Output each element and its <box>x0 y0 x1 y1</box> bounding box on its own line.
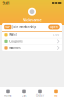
staticText: Order <box>36 94 44 97</box>
staticText: Favorites <box>9 46 20 50</box>
button[interactable]: Cart <box>16 87 32 100</box>
button[interactable]: Me <box>48 87 64 100</box>
button[interactable]: Favorites <box>2 45 62 51</box>
staticText: Coupons <box>9 40 22 43</box>
staticText: Open <box>50 25 58 29</box>
button[interactable]: Order <box>32 87 48 100</box>
staticText: VIP <box>5 25 10 29</box>
staticText: Wallet <box>9 33 17 36</box>
button[interactable]: Coupons <box>2 38 62 44</box>
staticText: Nickname <box>22 17 41 22</box>
staticText: Home <box>4 94 12 97</box>
staticText: Cart <box>21 94 26 97</box>
button[interactable]: Open <box>48 24 60 29</box>
button[interactable]: Wallet <box>2 32 62 38</box>
staticText: 9:41 <box>3 0 10 6</box>
staticText: Me <box>54 94 58 97</box>
staticText: Join membership <box>13 25 37 29</box>
button[interactable]: Home <box>0 87 16 100</box>
staticText: 0.00 <box>53 33 60 36</box>
